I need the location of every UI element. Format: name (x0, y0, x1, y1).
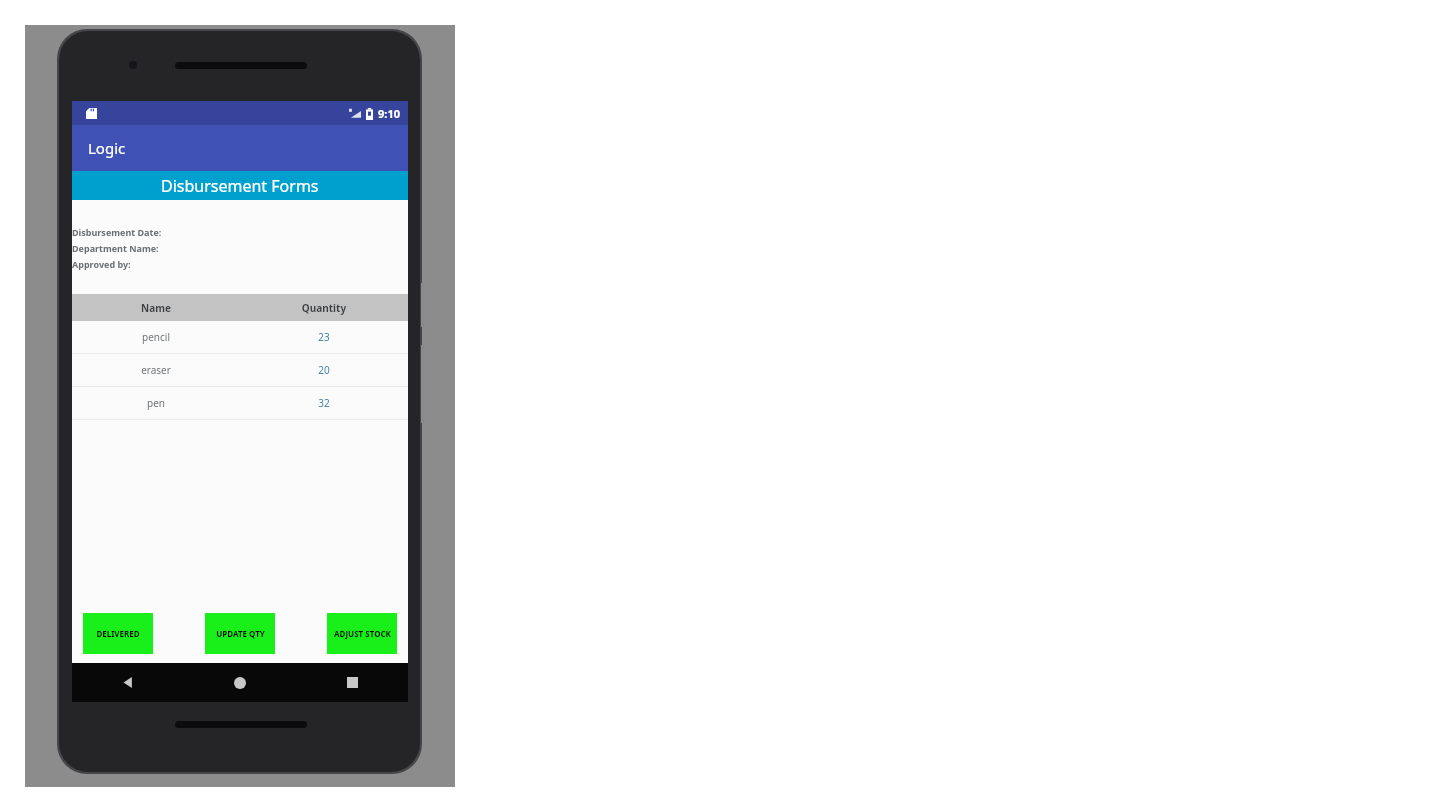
staticText: Name (72, 301, 240, 315)
button[interactable]: Recent apps (296, 663, 408, 702)
staticText: pencil (72, 330, 240, 344)
staticText: Department Name: (72, 242, 159, 254)
staticText: 23 (240, 330, 408, 344)
staticText: 20 (240, 363, 408, 377)
button[interactable]: Home (184, 663, 296, 702)
staticText: Approved by: (72, 258, 131, 270)
button[interactable]: ADJUST STOCK (327, 613, 397, 654)
button[interactable]: pencil (72, 321, 408, 354)
staticText: Disbursement Date: (72, 226, 162, 238)
button[interactable]: Back (72, 663, 184, 702)
button[interactable]: Logic (72, 125, 408, 171)
staticText: pen (72, 396, 240, 410)
staticText: DELIVERED (96, 628, 140, 639)
staticText: eraser (72, 363, 240, 377)
staticText: Quantity (240, 301, 408, 315)
staticText: 32 (240, 396, 408, 410)
button[interactable]: UPDATE QTY (205, 613, 275, 654)
staticText: Logic (88, 138, 126, 158)
staticText: 9:10 (378, 106, 400, 121)
staticText: Disbursement Forms (161, 175, 319, 197)
button[interactable]: pen (72, 387, 408, 420)
button[interactable]: DELIVERED (83, 613, 153, 654)
staticText: ADJUST STOCK (334, 628, 391, 639)
staticText: UPDATE QTY (216, 628, 265, 639)
button[interactable]: eraser (72, 354, 408, 387)
